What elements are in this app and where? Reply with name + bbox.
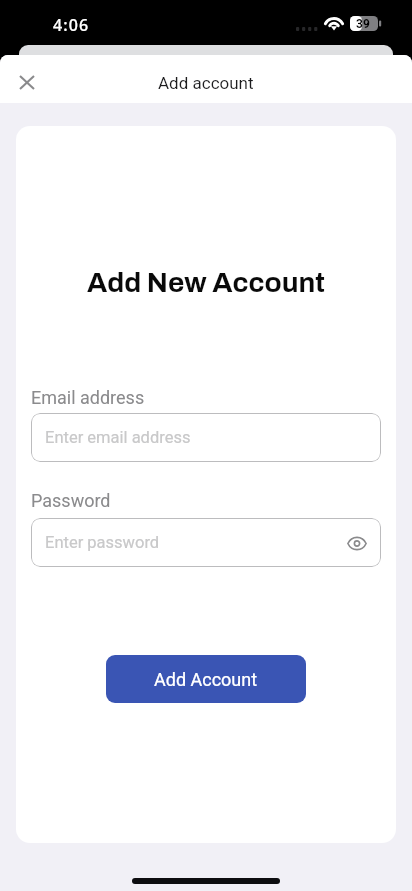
button[interactable]: Enter password	[31, 518, 381, 567]
staticText: Add Account	[154, 669, 258, 690]
staticText: Password	[31, 490, 111, 511]
staticText: Enter password	[45, 533, 160, 552]
button[interactable]: Show password	[341, 527, 373, 559]
staticText: 39	[356, 17, 370, 31]
staticText: Email address	[31, 387, 145, 408]
staticText: Add account	[158, 73, 254, 93]
staticText: Add New Account	[31, 267, 381, 297]
staticText: Enter email address	[45, 428, 191, 447]
button[interactable]: Add Account	[106, 655, 306, 703]
button[interactable]: Enter email address	[31, 413, 381, 462]
button[interactable]: Close	[5, 60, 49, 104]
staticText: 4:06	[53, 14, 90, 36]
